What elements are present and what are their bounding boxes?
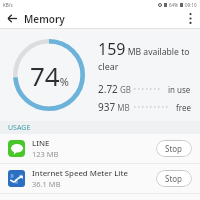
button[interactable] [180, 9, 200, 28]
staticText: Stop [165, 143, 183, 154]
button[interactable]: Internet Speed Meter Lite [0, 164, 200, 193]
staticText: 123 MB [32, 149, 59, 159]
staticText: 159 MB available to [98, 38, 190, 60]
staticText: 937 MB [98, 100, 134, 114]
staticText: 74% [30, 58, 69, 93]
button[interactable]: Stop [156, 140, 192, 157]
staticText: KB/s [3, 2, 13, 8]
staticText: in use [168, 84, 191, 95]
staticText: 64% [169, 2, 178, 8]
staticText: 2.72 GB [98, 82, 134, 96]
button[interactable]: LINE [0, 134, 200, 163]
staticText: Memory [24, 12, 65, 26]
staticText: Internet Speed Meter Lite [32, 168, 128, 179]
staticText: free [176, 102, 191, 113]
staticText: USAGE [8, 123, 31, 133]
staticText: clear [98, 60, 119, 72]
staticText: 36.1 MB [32, 179, 61, 189]
button[interactable]: Stop [156, 170, 192, 187]
staticText: 09:10 [185, 2, 197, 8]
button[interactable] [0, 9, 24, 28]
staticText: LINE [32, 138, 50, 149]
staticText: Stop [165, 173, 183, 184]
